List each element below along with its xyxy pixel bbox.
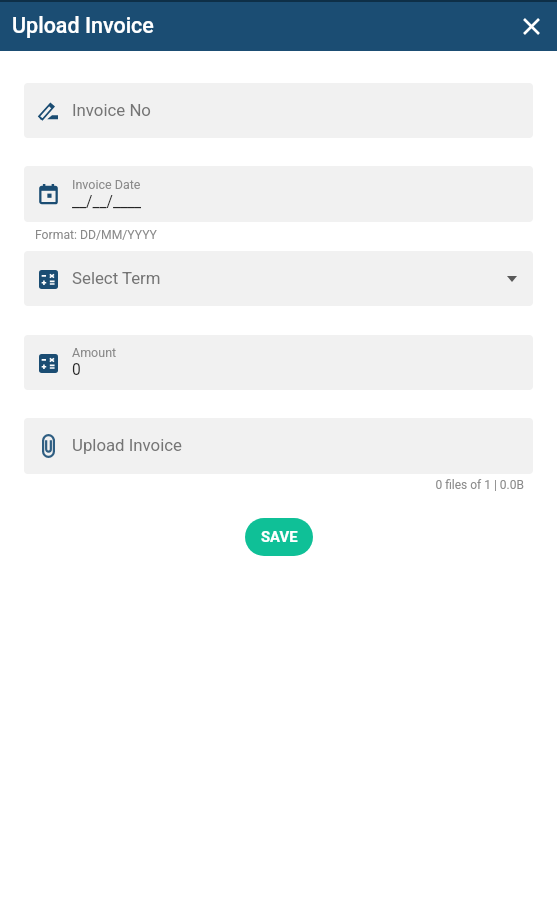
staticText: Amount (72, 345, 117, 360)
button[interactable]: Invoice No (24, 83, 533, 138)
staticText: 0 files of 1 | 0.0B (24, 478, 524, 492)
button[interactable]: Amount (24, 335, 533, 390)
button[interactable]: Select Term (24, 251, 533, 306)
staticText: Invoice No (72, 100, 151, 120)
staticText: Upload Invoice (12, 13, 154, 38)
staticText: Upload Invoice (72, 435, 182, 455)
staticText: Invoice Date (72, 177, 141, 192)
button[interactable]: SAVE (245, 518, 313, 556)
button[interactable]: Close (516, 11, 546, 41)
staticText: __/__/____ (72, 193, 142, 211)
staticText: 0 (72, 361, 81, 379)
staticText: SAVE (261, 528, 298, 545)
staticText: Format: DD/MM/YYYY (35, 228, 157, 242)
staticText: Select Term (72, 268, 507, 288)
button[interactable]: Invoice Date (24, 166, 533, 222)
button[interactable]: Upload Invoice (24, 418, 533, 474)
